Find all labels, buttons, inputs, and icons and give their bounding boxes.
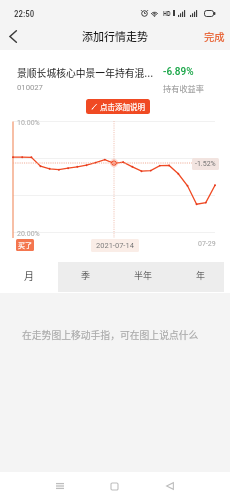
staticText: HD — [163, 10, 171, 18]
button[interactable]: 季 — [57, 258, 114, 292]
staticText: 季 — [81, 269, 91, 282]
staticText: 07-29 — [198, 240, 216, 248]
button[interactable]: 年 — [172, 258, 230, 292]
staticText: -1.52% — [195, 160, 216, 168]
staticText: 点击添加说明 — [100, 101, 145, 112]
button[interactable]: 半年 — [114, 258, 172, 292]
staticText: 半年 — [134, 269, 153, 282]
staticText: 22:50 — [14, 9, 35, 20]
staticText: 10.00% — [17, 119, 40, 127]
button[interactable]: 完成 — [198, 22, 230, 50]
staticText: 20.00% — [17, 230, 40, 238]
staticText: 2021-07-14 — [96, 241, 134, 250]
staticText: 010027 — [17, 83, 43, 92]
button[interactable]: 点击添加说明 — [86, 99, 150, 114]
staticText: 在走势图上移动手指，可在图上说点什么 — [22, 328, 199, 342]
button[interactable]: Recents — [47, 472, 73, 500]
staticText: 月 — [24, 268, 34, 282]
button[interactable]: Back — [157, 472, 183, 500]
staticText: 完成 — [204, 29, 225, 44]
staticText: 添加行情走势 — [82, 28, 148, 44]
staticText: 买了 — [18, 240, 32, 250]
staticText: -6.89% — [163, 66, 194, 78]
staticText: 景顺长城核心中景一年持有混... — [17, 66, 162, 80]
staticText: 年 — [196, 269, 206, 282]
button[interactable]: Home — [101, 472, 127, 500]
button[interactable]: 月 — [0, 258, 57, 292]
button[interactable]: Back — [0, 22, 26, 50]
staticText: 持有收益率 — [163, 82, 204, 94]
